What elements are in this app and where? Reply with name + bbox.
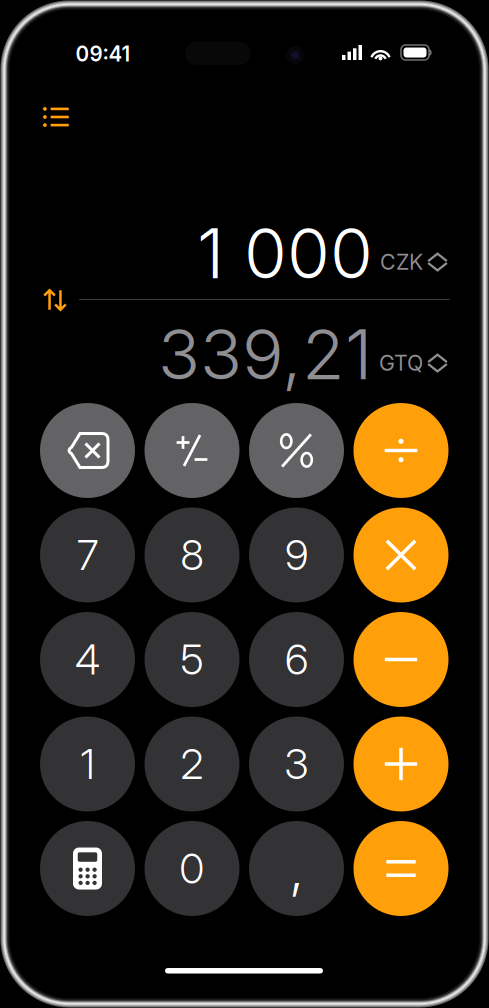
staticText: 8 <box>180 530 203 580</box>
staticText: 0 <box>179 843 204 893</box>
button[interactable]: Percent <box>249 403 344 498</box>
button[interactable]: Toggle sign <box>144 403 239 498</box>
staticText: 6 <box>285 634 308 684</box>
button[interactable]: Divide <box>353 403 448 498</box>
staticText: 5 <box>180 634 203 684</box>
staticText: GTQ <box>379 350 423 376</box>
button[interactable]: 5 <box>144 612 239 707</box>
button[interactable]: 6 <box>249 612 344 707</box>
staticText: 4 <box>75 634 100 684</box>
button[interactable]: 2 <box>144 716 239 811</box>
button[interactable]: Swap currencies <box>33 278 77 322</box>
staticText: , <box>289 836 304 901</box>
staticText: 9 <box>285 530 308 580</box>
button[interactable]: History <box>43 94 95 140</box>
button[interactable]: Subtract <box>353 612 448 707</box>
button[interactable]: 4 <box>40 612 135 707</box>
button[interactable]: 3 <box>249 716 344 811</box>
staticText: 339,21 <box>158 312 372 396</box>
button[interactable]: 1 <box>40 716 135 811</box>
staticText: 2 <box>180 739 203 789</box>
staticText: 1 000 <box>197 211 373 295</box>
button[interactable]: GTQ currency <box>372 350 448 396</box>
button[interactable]: 9 <box>249 507 344 602</box>
staticText: 09:41 <box>75 41 130 66</box>
button[interactable]: Add <box>353 716 448 811</box>
button[interactable]: 8 <box>144 507 239 602</box>
staticText: 7 <box>77 530 98 580</box>
staticText: 3 <box>284 739 308 789</box>
button[interactable]: Calculator <box>40 821 135 916</box>
button[interactable]: Multiply <box>353 507 448 602</box>
button[interactable]: 0 <box>144 821 239 916</box>
staticText: 1 <box>80 739 94 789</box>
staticText: CZK <box>380 249 423 275</box>
button[interactable]: Equals <box>353 821 448 916</box>
button[interactable]: Delete <box>40 403 135 498</box>
button[interactable]: Decimal separator <box>249 821 344 916</box>
button[interactable]: 7 <box>40 507 135 602</box>
button[interactable]: CZK currency <box>373 249 448 295</box>
